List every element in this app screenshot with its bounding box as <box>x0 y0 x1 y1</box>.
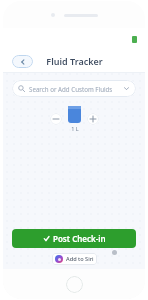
staticText: Fluid Tracker <box>46 55 103 67</box>
staticText: Search or Add Custom Fluids <box>29 85 123 93</box>
button[interactable]: Increase <box>87 113 99 125</box>
button[interactable]: Back <box>12 55 33 68</box>
button[interactable]: Water glass 1 L <box>68 106 81 123</box>
staticText: Post Check-in <box>53 233 106 244</box>
button[interactable]: Search or Add Custom Fluids <box>12 80 136 97</box>
button[interactable]: Add to Siri <box>52 253 97 265</box>
staticText: 1 L <box>71 125 79 132</box>
staticText: Add to Siri <box>66 255 94 263</box>
button[interactable]: Decrease <box>50 113 62 125</box>
button[interactable]: Post Check-in <box>12 229 136 248</box>
button[interactable]: Home <box>66 276 83 293</box>
